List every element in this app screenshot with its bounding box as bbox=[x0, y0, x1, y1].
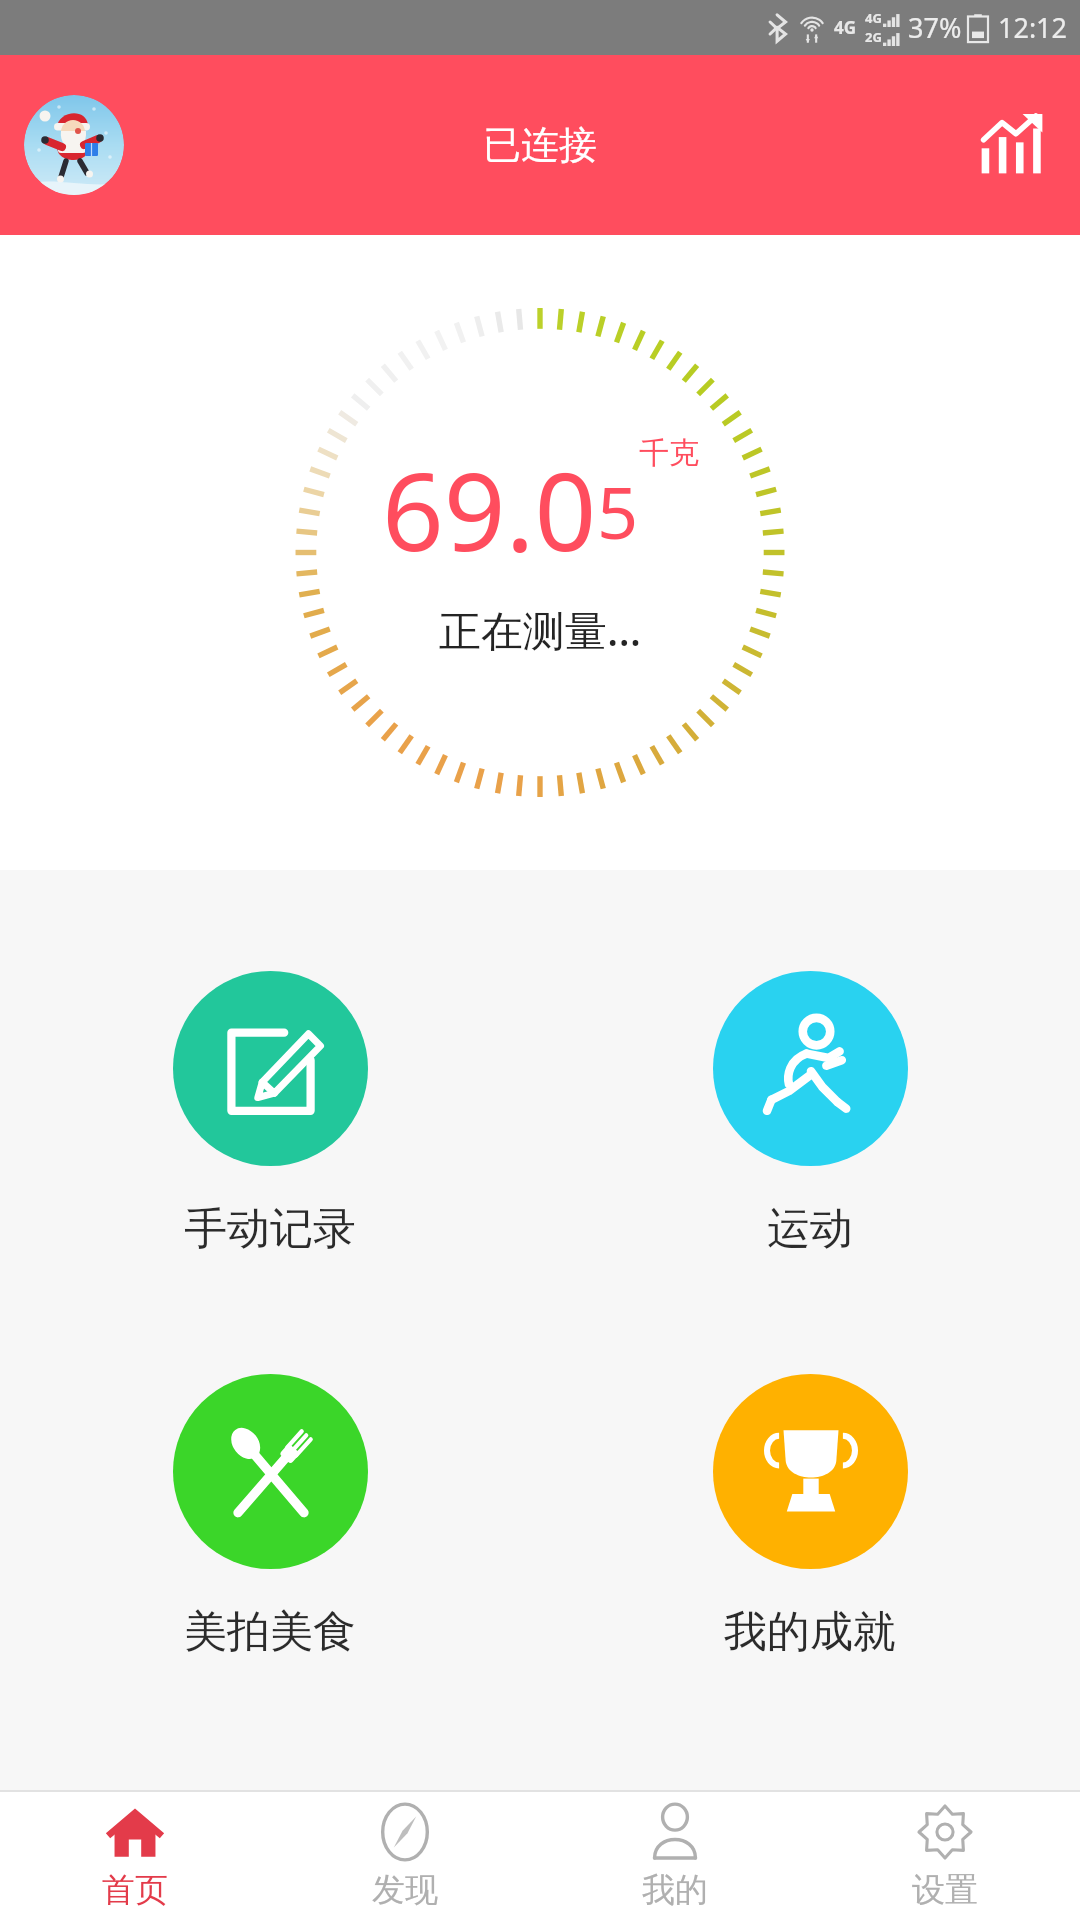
button[interactable]: 设置 bbox=[810, 1792, 1080, 1920]
staticText: 首页 bbox=[102, 1869, 168, 1911]
button[interactable]: Statistics chart bbox=[970, 103, 1054, 187]
button[interactable]: 我的成就 bbox=[540, 1370, 1080, 1663]
staticText: 发现 bbox=[372, 1869, 438, 1911]
button[interactable]: 美拍美食 bbox=[0, 1370, 540, 1663]
staticText: 12:12 bbox=[998, 9, 1068, 46]
staticText: 我的成就 bbox=[724, 1605, 896, 1659]
button[interactable]: 手动记录 bbox=[0, 967, 540, 1260]
staticText: 千克 bbox=[639, 434, 699, 472]
staticText: 美拍美食 bbox=[184, 1605, 356, 1659]
staticText: 5 bbox=[597, 462, 639, 560]
button[interactable]: 运动 bbox=[540, 967, 1080, 1260]
staticText: 69.0 bbox=[382, 436, 597, 583]
staticText: 4G bbox=[865, 9, 882, 27]
staticText: 正在测量... bbox=[439, 601, 642, 658]
staticText: 运动 bbox=[767, 1202, 853, 1256]
button[interactable]: 我的 bbox=[540, 1792, 810, 1920]
button[interactable]: Profile avatar bbox=[24, 95, 124, 195]
staticText: 我的 bbox=[642, 1869, 708, 1911]
staticText: 2G bbox=[865, 28, 882, 46]
staticText: 37% bbox=[908, 9, 962, 46]
staticText: 手动记录 bbox=[184, 1202, 356, 1256]
staticText: 已连接 bbox=[483, 121, 597, 169]
button[interactable]: 发现 bbox=[270, 1792, 540, 1920]
staticText: 4G bbox=[834, 16, 857, 39]
staticText: 设置 bbox=[912, 1869, 978, 1911]
button[interactable]: 首页 bbox=[0, 1792, 270, 1920]
